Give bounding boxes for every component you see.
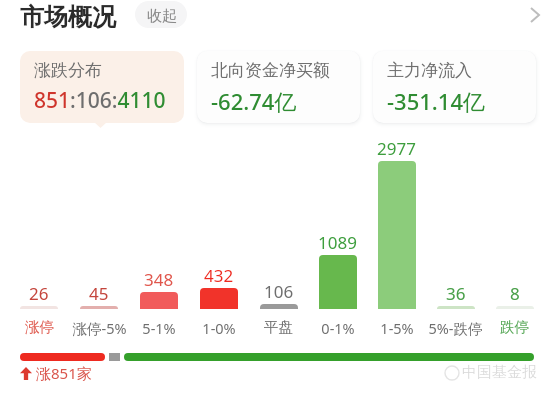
button[interactable]: 平盘 bbox=[249, 318, 308, 336]
staticText: 36 bbox=[446, 282, 466, 305]
staticText: 432 bbox=[204, 264, 234, 287]
button[interactable]: 收起 bbox=[135, 1, 187, 28]
staticText: 中国基金报 bbox=[462, 363, 537, 382]
button[interactable]: 5%-跌停 bbox=[426, 318, 485, 338]
button[interactable]: 北向资金净买额 bbox=[197, 51, 360, 123]
button[interactable]: 涨停 bbox=[9, 318, 69, 336]
staticText: 8 bbox=[510, 282, 520, 305]
button[interactable]: 0-1% bbox=[308, 318, 367, 338]
button[interactable]: 跌停 bbox=[485, 318, 544, 336]
staticText: 涨跌分布 bbox=[34, 60, 102, 81]
staticText: 主力净流入 bbox=[387, 60, 472, 81]
staticText: 收起 bbox=[147, 7, 177, 26]
staticText: 1-0% bbox=[202, 318, 236, 338]
staticText: 跌停 bbox=[500, 318, 529, 336]
button[interactable]: 涨停-5% bbox=[69, 318, 129, 338]
staticText: 5%-跌停 bbox=[428, 318, 483, 338]
staticText: 851:106:4110 bbox=[34, 86, 166, 115]
staticText: 106 bbox=[264, 280, 294, 303]
staticText: -351.14亿 bbox=[387, 86, 485, 116]
staticText: 涨停-5% bbox=[72, 318, 127, 338]
staticText: 涨851家 bbox=[36, 363, 92, 383]
staticText: 5-1% bbox=[142, 318, 176, 338]
button[interactable]: 更多 bbox=[520, 0, 550, 30]
button[interactable]: 1-5% bbox=[367, 318, 426, 338]
staticText: 涨停 bbox=[25, 318, 54, 336]
staticText: -62.74亿 bbox=[211, 86, 297, 116]
staticText: 45 bbox=[89, 282, 109, 305]
button[interactable]: 1-0% bbox=[189, 318, 249, 338]
staticText: 2977 bbox=[377, 137, 416, 160]
staticText: 市场概况 bbox=[20, 2, 116, 32]
button[interactable]: 主力净流入 bbox=[373, 51, 536, 123]
staticText: 北向资金净买额 bbox=[211, 60, 330, 81]
button[interactable]: 5-1% bbox=[129, 318, 189, 338]
staticText: 1-5% bbox=[380, 318, 414, 338]
staticText: 平盘 bbox=[264, 318, 293, 336]
staticText: 348 bbox=[144, 268, 174, 291]
staticText: 26 bbox=[29, 282, 49, 305]
staticText: 1089 bbox=[318, 231, 357, 254]
button[interactable]: 涨跌分布 bbox=[20, 51, 184, 123]
staticText: 0-1% bbox=[321, 318, 355, 338]
